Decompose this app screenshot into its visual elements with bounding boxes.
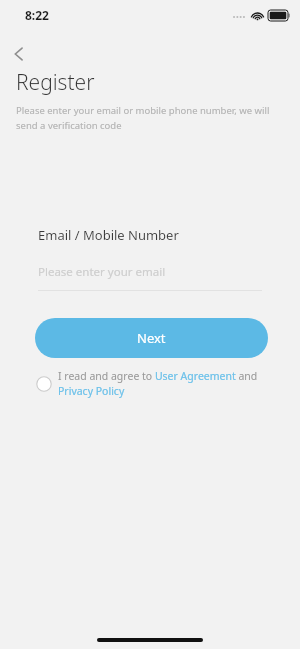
button[interactable]: Back — [6, 41, 32, 67]
staticText: Next — [137, 329, 166, 347]
staticText: Register — [16, 68, 95, 97]
button[interactable]: Please enter your email — [38, 264, 262, 291]
staticText: 8:22 — [25, 7, 49, 23]
staticText: I read and agree to User Agreement and P… — [58, 369, 270, 398]
staticText: Email / Mobile Number — [38, 226, 179, 244]
staticText: Please enter your email or mobile phone … — [16, 104, 278, 132]
button[interactable]: Agree checkbox — [36, 369, 270, 398]
other: Agree checkbox — [36, 376, 52, 392]
staticText: Please enter your email — [38, 264, 166, 280]
button[interactable]: Next — [35, 318, 268, 358]
